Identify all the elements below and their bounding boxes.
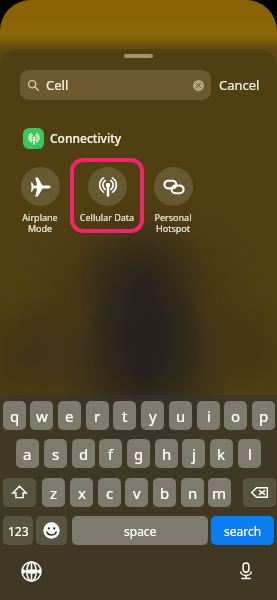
button[interactable]: t <box>113 401 136 430</box>
staticText: Personal Hotspot <box>140 211 206 234</box>
staticText: p <box>259 406 269 426</box>
button[interactable]: x <box>70 478 93 507</box>
staticText: f <box>108 444 114 464</box>
staticText: Cell <box>46 76 69 94</box>
button[interactable]: Connectivity <box>23 127 122 149</box>
staticText: j <box>192 444 196 464</box>
staticText: space <box>124 523 157 539</box>
staticText: a <box>23 444 32 464</box>
staticText: u <box>176 406 186 426</box>
button[interactable]: f <box>99 439 122 468</box>
staticText: w <box>36 406 48 426</box>
button[interactable]: i <box>197 401 220 430</box>
button[interactable]: Clear text <box>193 80 204 91</box>
button[interactable]: j <box>182 439 205 468</box>
button[interactable]: Shift <box>3 478 36 507</box>
button[interactable]: r <box>86 401 109 430</box>
staticText: Cellular Data <box>74 211 140 223</box>
button[interactable]: c <box>98 478 121 507</box>
button[interactable]: d <box>72 439 95 468</box>
staticText: r <box>94 406 101 426</box>
staticText: q <box>10 406 20 426</box>
button[interactable]: u <box>169 401 192 430</box>
button[interactable]: search <box>211 516 274 545</box>
staticText: z <box>50 483 58 503</box>
button[interactable]: y <box>141 401 164 430</box>
button[interactable]: p <box>252 401 275 430</box>
staticText: Connectivity <box>50 130 122 146</box>
button[interactable]: o <box>224 401 247 430</box>
staticText: x <box>78 483 86 503</box>
staticText: i <box>207 406 211 426</box>
button[interactable]: b <box>153 478 176 507</box>
staticText: b <box>160 483 170 503</box>
button[interactable]: e <box>58 401 81 430</box>
button[interactable]: q <box>3 401 26 430</box>
button[interactable]: Cell <box>20 70 211 100</box>
staticText: d <box>79 444 89 464</box>
staticText: Airplane Mode <box>7 211 73 234</box>
staticText: c <box>106 483 114 503</box>
button[interactable]: 123 <box>3 516 33 545</box>
staticText: l <box>248 444 252 464</box>
button[interactable]: Personal Hotspot <box>140 164 206 234</box>
button[interactable]: a <box>16 439 39 468</box>
button[interactable]: l <box>238 439 261 468</box>
button[interactable]: Emoji keyboard <box>36 516 67 545</box>
button[interactable]: m <box>208 478 231 507</box>
staticText: t <box>122 406 128 426</box>
button[interactable]: Backspace <box>243 478 276 507</box>
staticText: o <box>231 406 241 426</box>
staticText: k <box>217 444 226 464</box>
staticText: y <box>149 406 157 426</box>
button[interactable]: Dictation <box>234 559 258 583</box>
button[interactable]: z <box>42 478 65 507</box>
staticText: n <box>188 483 198 503</box>
button[interactable]: k <box>210 439 233 468</box>
button[interactable]: g <box>127 439 150 468</box>
button[interactable]: Airplane Mode <box>7 164 73 234</box>
staticText: e <box>65 406 74 426</box>
staticText: g <box>134 444 144 464</box>
staticText: 123 <box>8 523 29 539</box>
button[interactable]: Cancel <box>216 71 262 99</box>
staticText: s <box>52 444 60 464</box>
button[interactable]: Cellular Data <box>74 164 140 234</box>
button[interactable]: s <box>44 439 67 468</box>
button[interactable]: v <box>125 478 148 507</box>
button[interactable]: w <box>30 401 53 430</box>
button[interactable]: space <box>72 516 208 545</box>
staticText: search <box>224 523 262 539</box>
button[interactable]: h <box>155 439 178 468</box>
staticText: v <box>133 483 141 503</box>
staticText: h <box>162 444 172 464</box>
button[interactable]: Next keyboard <box>19 559 43 583</box>
staticText: Cancel <box>219 76 260 94</box>
button[interactable]: n <box>181 478 204 507</box>
staticText: m <box>212 483 227 503</box>
